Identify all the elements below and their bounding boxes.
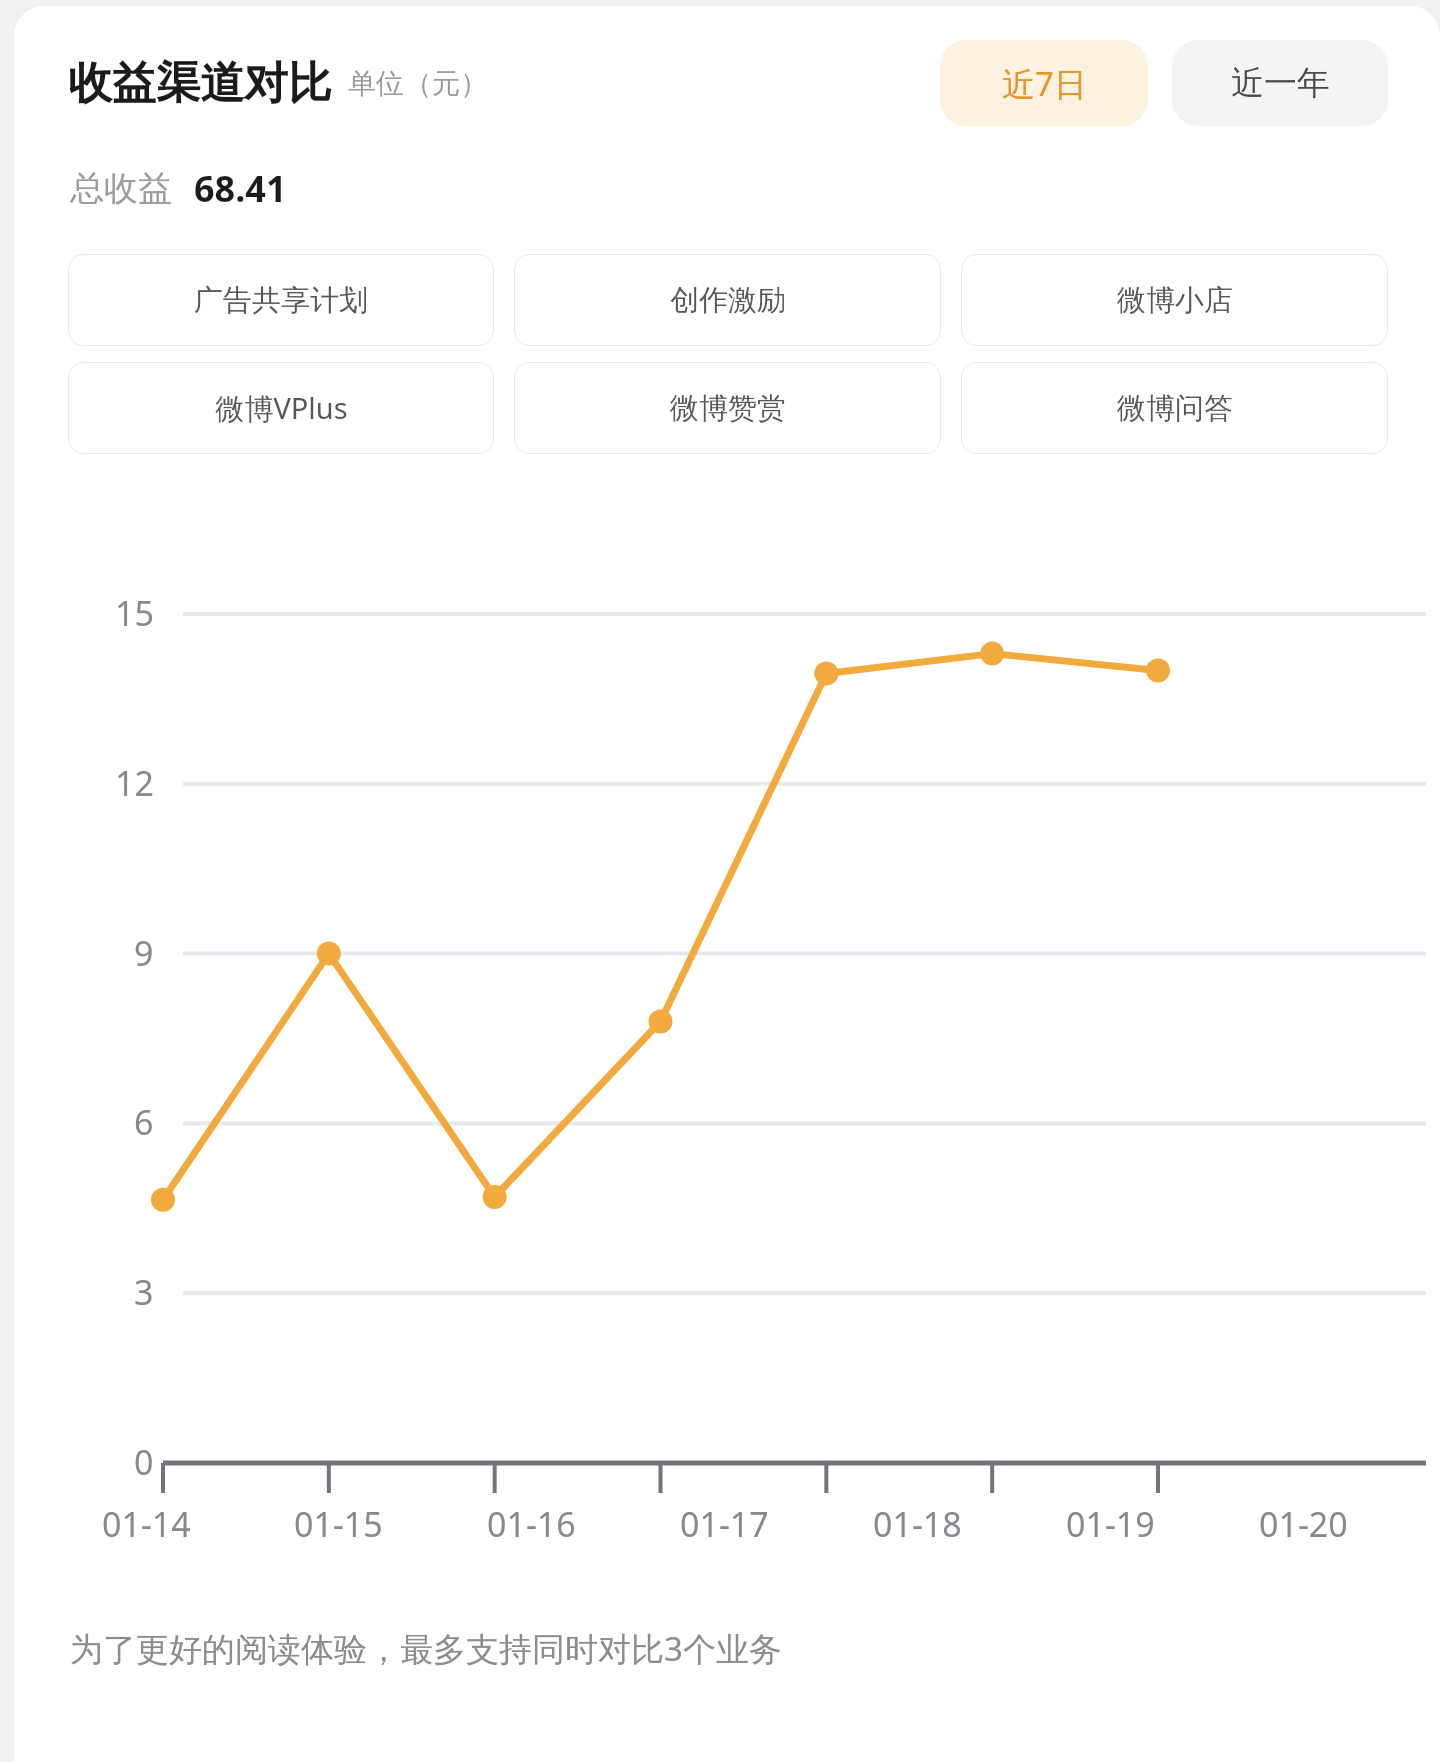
staticText: 微博小店 [1117, 282, 1233, 319]
button[interactable]: 微博赞赏 [514, 362, 941, 454]
staticText: 01-20 [1259, 1501, 1348, 1547]
button[interactable]: 创作激励 [514, 254, 941, 346]
staticText: 01-16 [487, 1501, 576, 1547]
staticText: 近一年 [1231, 62, 1330, 104]
staticText: 6 [134, 1099, 154, 1145]
staticText: 创作激励 [670, 282, 786, 319]
staticText: 广告共享计划 [194, 282, 368, 319]
button[interactable]: 广告共享计划 [68, 254, 494, 346]
staticText: 9 [134, 930, 154, 976]
staticText: 近7日 [1002, 61, 1087, 106]
button[interactable]: 微博问答 [961, 362, 1388, 454]
staticText: 收益渠道对比 [68, 56, 332, 111]
staticText: 01-19 [1066, 1501, 1155, 1547]
staticText: 微博问答 [1117, 390, 1233, 427]
staticText: 为了更好的阅读体验，最多支持同时对比3个业务 [70, 1626, 782, 1671]
button[interactable]: 微博VPlus [68, 362, 494, 454]
staticText: 0 [134, 1439, 154, 1485]
staticText: 01-15 [294, 1501, 383, 1547]
button[interactable]: 近一年 [1172, 40, 1388, 126]
staticText: 68.41 [194, 164, 287, 213]
staticText: 微博赞赏 [670, 390, 786, 427]
staticText: 01-18 [873, 1501, 962, 1547]
staticText: 总收益 [70, 167, 172, 210]
staticText: 01-14 [102, 1501, 191, 1547]
button[interactable]: 近7日 [940, 40, 1148, 126]
staticText: 12 [115, 760, 154, 806]
staticText: 3 [134, 1269, 154, 1315]
button[interactable]: 微博小店 [961, 254, 1388, 346]
staticText: 01-17 [680, 1501, 769, 1547]
staticText: 单位（元） [348, 66, 488, 101]
staticText: 15 [115, 590, 154, 636]
staticText: 微博VPlus [215, 388, 348, 428]
